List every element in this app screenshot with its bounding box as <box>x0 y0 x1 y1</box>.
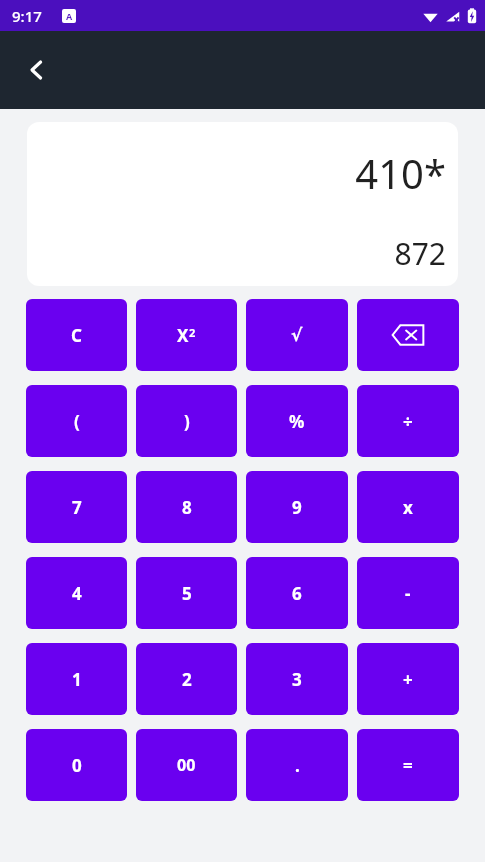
staticText: % <box>289 410 305 433</box>
staticText: 5 <box>182 582 192 605</box>
button[interactable]: 0 <box>26 729 127 801</box>
button[interactable]: 9 <box>246 471 348 543</box>
staticText: 9:17 <box>12 6 42 26</box>
button[interactable]: ) <box>136 385 237 457</box>
button[interactable]: 7 <box>26 471 127 543</box>
staticText: 1 <box>72 668 82 691</box>
staticText: A <box>66 10 73 22</box>
button[interactable]: 8 <box>136 471 237 543</box>
staticText: 7 <box>72 496 82 519</box>
staticText: ) <box>184 410 190 433</box>
button[interactable]: ÷ <box>357 385 459 457</box>
button[interactable]: 2 <box>136 643 237 715</box>
button[interactable]: = <box>357 729 459 801</box>
staticText: 4 <box>72 582 82 605</box>
staticText: X <box>177 324 189 347</box>
button[interactable]: 4 <box>26 557 127 629</box>
staticText: . <box>295 754 300 777</box>
button[interactable]: 3 <box>246 643 348 715</box>
staticText: C <box>71 324 82 347</box>
staticText: 9 <box>292 496 302 519</box>
button[interactable]: - <box>357 557 459 629</box>
button[interactable]: C <box>26 299 127 371</box>
button[interactable]: x <box>357 471 459 543</box>
staticText: - <box>405 582 411 605</box>
button[interactable]: . <box>246 729 348 801</box>
staticText: 2 <box>189 325 196 340</box>
button[interactable]: 6 <box>246 557 348 629</box>
button[interactable]: 00 <box>136 729 237 801</box>
staticText: √ <box>291 325 303 345</box>
staticText: 410* <box>355 146 446 200</box>
button[interactable]: 1 <box>26 643 127 715</box>
staticText: ( <box>74 410 80 433</box>
staticText: 0 <box>72 754 82 777</box>
button[interactable]: % <box>246 385 348 457</box>
button[interactable]: X <box>136 299 237 371</box>
button[interactable]: ( <box>26 385 127 457</box>
staticText: x <box>403 496 413 519</box>
button[interactable]: + <box>357 643 459 715</box>
staticText: 00 <box>177 754 196 776</box>
staticText: 3 <box>292 668 302 691</box>
button[interactable]: 5 <box>136 557 237 629</box>
staticText: = <box>403 754 413 777</box>
button[interactable]: Back <box>14 47 60 93</box>
staticText: 2 <box>182 668 192 691</box>
staticText: 8 <box>182 496 192 519</box>
staticText: 872 <box>394 233 446 274</box>
staticText: 6 <box>292 582 302 605</box>
staticText: ÷ <box>403 410 413 433</box>
button[interactable]: √ <box>246 299 348 371</box>
staticText: + <box>403 668 413 691</box>
button[interactable]: Backspace <box>357 299 459 371</box>
